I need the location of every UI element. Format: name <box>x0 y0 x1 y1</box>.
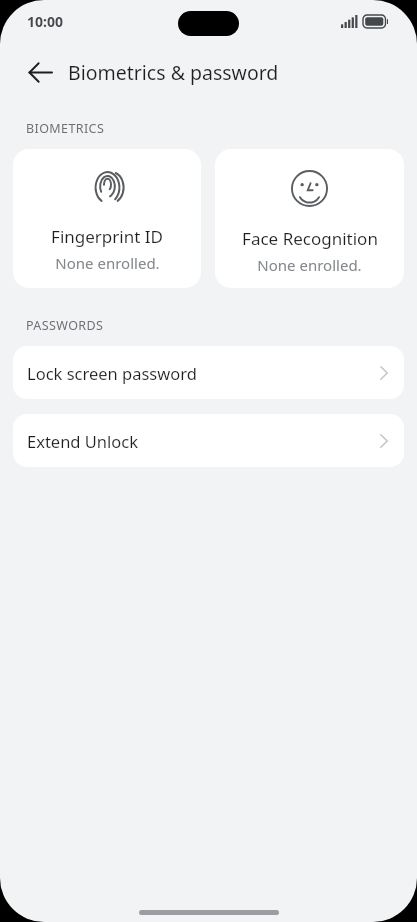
staticText: BIOMETRICS <box>26 120 105 137</box>
staticText: Fingerprint ID <box>51 225 163 248</box>
button[interactable]: Back <box>16 48 64 96</box>
staticText: Lock screen password <box>27 362 197 384</box>
button[interactable]: Lock screen password <box>13 346 404 399</box>
button[interactable]: Face Recognition <box>215 149 404 288</box>
staticText: PASSWORDS <box>26 317 104 334</box>
staticText: Extend Unlock <box>27 430 139 452</box>
button[interactable]: Extend Unlock <box>13 414 404 467</box>
staticText: 10:00 <box>27 12 63 31</box>
staticText: None enrolled. <box>55 253 160 273</box>
button[interactable]: Fingerprint ID <box>13 149 201 288</box>
staticText: None enrolled. <box>257 255 362 275</box>
staticText: Biometrics & password <box>68 59 279 86</box>
staticText: Face Recognition <box>242 227 378 250</box>
